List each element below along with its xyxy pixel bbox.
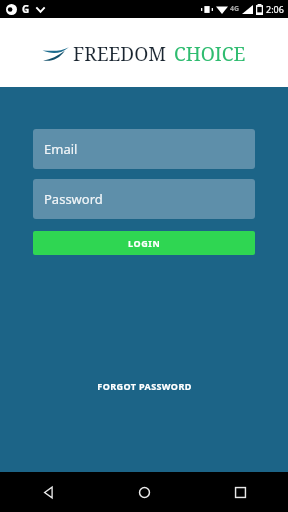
button[interactable]: Home [96, 472, 192, 512]
staticText: CHOICE [174, 41, 246, 67]
staticText: FREEDOM [73, 41, 167, 67]
button[interactable]: Email [33, 129, 255, 169]
button[interactable]: LOGIN [33, 231, 255, 255]
button[interactable]: Back [0, 472, 96, 512]
staticText: 2:06 [266, 3, 284, 15]
button[interactable]: Password [33, 179, 255, 219]
staticText: FORGOT PASSWORD [97, 380, 192, 392]
staticText: Email [44, 140, 78, 158]
button[interactable]: FORGOT PASSWORD [87, 375, 202, 397]
button[interactable]: Recent apps [192, 472, 288, 512]
staticText: G [22, 2, 30, 16]
staticText: 4G [230, 4, 240, 14]
staticText: LOGIN [128, 237, 161, 249]
staticText: Password [44, 190, 103, 208]
